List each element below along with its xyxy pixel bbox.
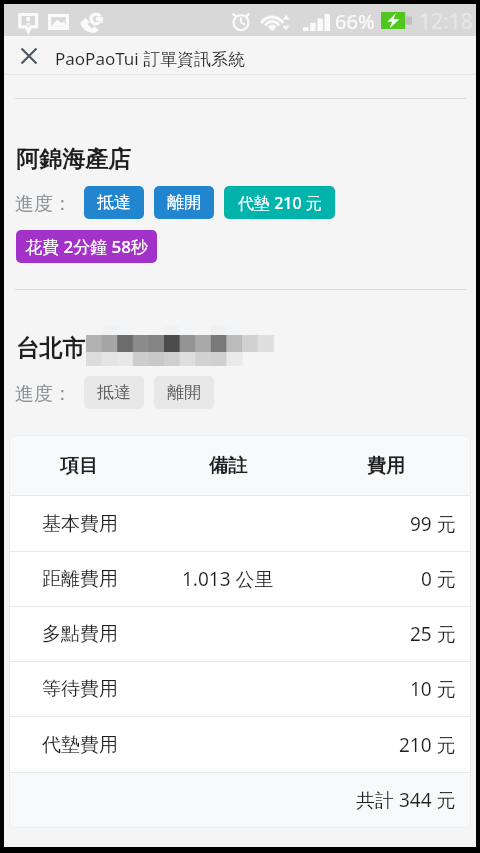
staticText: 花費 2分鐘 58秒 bbox=[25, 235, 149, 258]
staticText: 66% bbox=[335, 8, 375, 35]
button[interactable]: 代墊費用 bbox=[10, 717, 470, 772]
button[interactable]: 多點費用 bbox=[10, 607, 470, 661]
staticText: 代墊費用 bbox=[42, 733, 118, 757]
staticText: 1.013 公里 bbox=[182, 566, 274, 592]
staticText: 台北市 bbox=[16, 334, 85, 363]
button[interactable]: 離開 bbox=[154, 376, 214, 409]
staticText: 離開 bbox=[167, 192, 201, 213]
staticText: PaoPaoTui 訂單資訊系統 bbox=[55, 47, 246, 70]
button[interactable]: 離開 bbox=[154, 186, 214, 219]
button[interactable]: 抵達 bbox=[84, 186, 144, 219]
button[interactable]: 基本費用 bbox=[10, 496, 470, 551]
button[interactable]: Close bbox=[20, 47, 38, 65]
staticText: 距離費用 bbox=[42, 567, 118, 591]
staticText: 抵達 bbox=[97, 192, 131, 213]
staticText: 阿錦海產店 bbox=[16, 145, 131, 174]
button[interactable]: 代墊 210 元 bbox=[224, 186, 335, 219]
staticText: 等待費用 bbox=[42, 677, 118, 701]
staticText: 項目 bbox=[60, 454, 98, 478]
staticText: 離開 bbox=[167, 382, 201, 403]
staticText: 費用 bbox=[367, 454, 405, 478]
staticText: 基本費用 bbox=[42, 512, 118, 536]
staticText: 進度： bbox=[15, 382, 72, 406]
staticText: 備註 bbox=[209, 454, 247, 478]
staticText: 抵達 bbox=[97, 382, 131, 403]
staticText: 多點費用 bbox=[42, 622, 118, 646]
staticText: 0 元 bbox=[421, 566, 456, 592]
button[interactable]: 等待費用 bbox=[10, 662, 470, 716]
staticText: 進度： bbox=[15, 192, 72, 216]
staticText: 210 元 bbox=[399, 732, 456, 758]
staticText: 25 元 bbox=[410, 621, 456, 647]
staticText: 12:18 bbox=[419, 7, 473, 36]
staticText: 10 元 bbox=[410, 676, 456, 702]
staticText: 99 元 bbox=[410, 511, 456, 537]
button[interactable]: 花費 2分鐘 58秒 bbox=[16, 230, 157, 263]
button[interactable]: 抵達 bbox=[84, 376, 144, 409]
button[interactable]: 距離費用 bbox=[10, 552, 470, 606]
staticText: 共計 344 元 bbox=[356, 787, 456, 813]
staticText: 代墊 210 元 bbox=[238, 192, 322, 214]
